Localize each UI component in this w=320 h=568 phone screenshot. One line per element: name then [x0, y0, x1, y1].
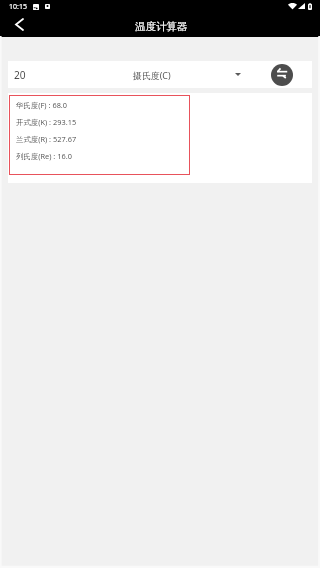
staticText: 摄氏度(C) — [133, 69, 171, 81]
staticText: 10:15 — [9, 2, 27, 12]
staticText: 开式度(K) : 293.15 — [16, 117, 77, 127]
staticText: 温度计算器 — [135, 20, 188, 33]
button[interactable]: 20 — [8, 61, 128, 88]
staticText: 20 — [14, 68, 26, 82]
button[interactable]: 摄氏度(C) — [128, 61, 253, 88]
button[interactable]: Back — [0, 16, 32, 37]
staticText: 列氏度(Re) : 16.0 — [16, 151, 72, 161]
staticText: 华氏度(F) : 68.0 — [16, 100, 68, 110]
button[interactable]: Swap units — [271, 64, 293, 86]
staticText: 兰式度(R) : 527.67 — [16, 134, 77, 144]
